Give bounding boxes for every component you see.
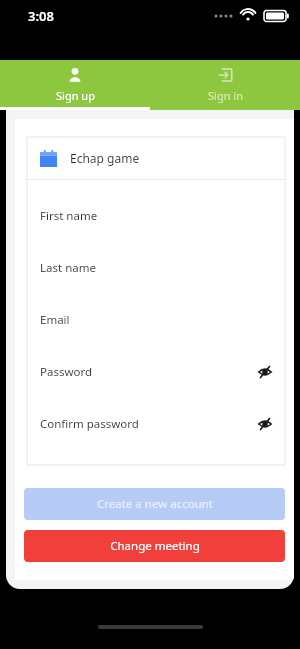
staticText: Email bbox=[40, 312, 70, 328]
button[interactable]: Show password bbox=[255, 362, 275, 382]
button[interactable]: Confirm password bbox=[27, 398, 285, 450]
staticText: First name bbox=[40, 208, 98, 224]
staticText: Last name bbox=[40, 260, 96, 276]
staticText: Change meeting bbox=[110, 538, 200, 554]
staticText: Password bbox=[40, 364, 93, 380]
staticText: 3:08 bbox=[28, 7, 54, 25]
button[interactable]: Show password bbox=[255, 414, 275, 434]
button[interactable]: First name bbox=[27, 190, 285, 242]
staticText: Sign up bbox=[56, 88, 95, 103]
staticText: Confirm password bbox=[40, 416, 139, 432]
button[interactable]: Create a new account bbox=[24, 488, 285, 520]
staticText: Echap game bbox=[70, 150, 140, 166]
button[interactable]: Sign in bbox=[150, 60, 300, 110]
button[interactable]: Email bbox=[27, 294, 285, 346]
button[interactable]: Sign up bbox=[0, 60, 150, 110]
button[interactable]: Last name bbox=[27, 242, 285, 294]
button[interactable]: Change meeting bbox=[24, 530, 285, 562]
staticText: Create a new account bbox=[97, 496, 213, 512]
staticText: Sign in bbox=[208, 88, 243, 103]
button[interactable]: Password bbox=[27, 346, 285, 398]
button[interactable]: Echap game bbox=[27, 137, 285, 179]
